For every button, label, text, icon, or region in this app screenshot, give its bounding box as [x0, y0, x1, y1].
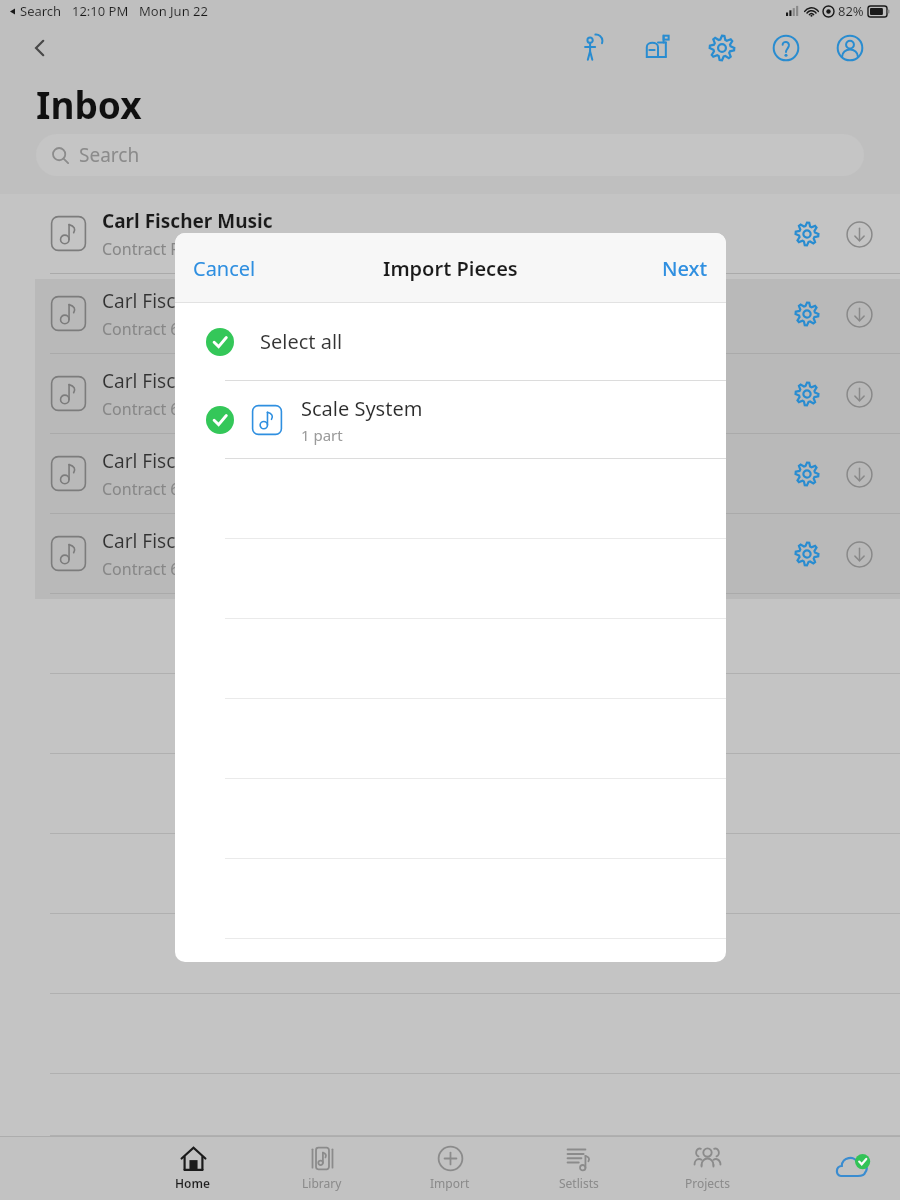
staticText: Search: [20, 2, 62, 20]
button[interactable]: Settings: [704, 30, 740, 66]
button[interactable]: Back: [22, 30, 58, 66]
staticText: Carl Fischer Music: [102, 288, 263, 314]
button[interactable]: Next: [654, 247, 716, 290]
button[interactable]: Settings: [784, 211, 830, 257]
staticText: Next: [662, 255, 708, 282]
button[interactable]: Import: [407, 1136, 493, 1200]
staticText: Carl Fischer Music: [102, 368, 263, 394]
button[interactable]: Download: [836, 291, 882, 337]
staticText: Home: [175, 1175, 211, 1191]
staticText: Mon Jun 22: [139, 2, 208, 20]
staticText: Search: [79, 142, 140, 168]
button[interactable]: Cancel: [185, 247, 264, 290]
staticText: Contract RENEWAL notification: [102, 238, 333, 260]
staticText: Contract 6abc notification: [102, 558, 296, 580]
button[interactable]: Download: [836, 211, 882, 257]
button[interactable]: Setlists: [536, 1136, 622, 1200]
button[interactable]: Download: [836, 531, 882, 577]
button[interactable]: Settings: [784, 371, 830, 417]
staticText: Library: [302, 1175, 342, 1191]
button[interactable]: Account: [832, 30, 868, 66]
staticText: Contract 6abc notification: [102, 478, 296, 500]
staticText: Cancel: [193, 255, 256, 282]
button[interactable]: Conductor: [576, 30, 612, 66]
staticText: Carl Fischer Music: [102, 208, 273, 234]
button[interactable]: Help: [768, 30, 804, 66]
staticText: Scale System: [301, 395, 423, 422]
button[interactable]: Mailbox: [640, 30, 676, 66]
button[interactable]: Settings: [784, 451, 830, 497]
staticText: Select all: [260, 328, 343, 355]
button[interactable]: Select all: [175, 303, 726, 381]
staticText: 12:10 PM: [72, 2, 129, 20]
staticText: Carl Fischer Music: [102, 448, 263, 474]
button[interactable]: Download: [836, 371, 882, 417]
button[interactable]: Search: [36, 134, 864, 176]
staticText: Contract 6abc notification: [102, 318, 296, 340]
button[interactable]: Carl Fischer Music: [0, 274, 900, 354]
button[interactable]: Carl Fischer Music: [0, 434, 900, 514]
staticText: Contract 6abc notification: [102, 398, 296, 420]
button[interactable]: Carl Fischer Music: [0, 354, 900, 434]
staticText: Import: [430, 1175, 470, 1191]
button[interactable]: Download: [836, 451, 882, 497]
staticText: Setlists: [559, 1175, 599, 1191]
button[interactable]: Scale System: [175, 381, 726, 459]
staticText: Inbox: [36, 79, 142, 129]
button[interactable]: Settings: [784, 291, 830, 337]
staticText: Projects: [685, 1175, 730, 1191]
button[interactable]: Carl Fischer Music: [0, 514, 900, 594]
button[interactable]: Projects: [664, 1136, 750, 1200]
button[interactable]: Library: [279, 1136, 365, 1200]
button[interactable]: Carl Fischer Music: [0, 194, 900, 274]
button[interactable]: Home: [150, 1136, 236, 1200]
staticText: Carl Fischer Music: [102, 528, 263, 554]
button[interactable]: Settings: [784, 531, 830, 577]
staticText: 1 part: [301, 425, 343, 445]
staticText: 82%: [838, 2, 864, 20]
staticText: Import Pieces: [383, 255, 518, 282]
button[interactable]: Sync status: [830, 1145, 876, 1191]
